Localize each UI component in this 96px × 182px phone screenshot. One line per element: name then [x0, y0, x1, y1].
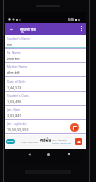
staticText: Jan. Nam — [7, 108, 21, 112]
button[interactable]: Home — [44, 150, 52, 158]
button[interactable]: Jan. Nam — [5, 107, 86, 121]
staticText: Jan - ugha dis — [7, 122, 27, 126]
staticText: Date of Birth — [7, 80, 26, 84]
staticText: 3,03,841 — [7, 113, 22, 118]
button[interactable]: More options — [78, 25, 85, 32]
button[interactable]: Jan - ugha dis — [5, 121, 86, 135]
staticText: 1,03,496 — [7, 99, 22, 104]
staticText: सीता देवी — [7, 70, 20, 75]
staticText: 15,50,55,555 — [7, 127, 29, 132]
staticText: Classes Google Play — [52, 142, 72, 145]
staticText: Top 1 Training — [52, 139, 67, 142]
staticText: Mother Name — [7, 65, 28, 69]
staticText: Student's Name — [7, 37, 31, 41]
staticText: राम — [7, 42, 12, 47]
staticText: श्याम राम — [7, 56, 20, 61]
staticText: Fa. Name — [7, 51, 21, 55]
button[interactable]: Student's Name — [5, 36, 86, 50]
staticText: सूचना पत्र — [20, 26, 36, 32]
button[interactable]: Back — [25, 150, 33, 158]
staticText: 1,44,513 — [7, 85, 22, 90]
staticText: Great Textbook — [21, 140, 39, 143]
button[interactable]: Recent apps — [65, 150, 73, 158]
staticText: 5:16 — [68, 18, 74, 22]
button[interactable]: Back — [8, 26, 15, 33]
button[interactable]: Open app — [75, 138, 82, 145]
button[interactable]: Install — [5, 135, 86, 149]
staticText: Install — [7, 140, 14, 143]
button[interactable]: Date of Birth — [5, 79, 86, 93]
button[interactable]: Fa. Name — [5, 50, 86, 64]
staticText: Student's Class — [7, 94, 29, 98]
button[interactable]: Mother Name — [5, 64, 86, 78]
staticText: सर्वश्रेष्ठ — [40, 138, 52, 143]
button[interactable]: Close ad — [70, 123, 79, 132]
button[interactable]: Student's Class — [5, 93, 86, 107]
button[interactable]: Install — [6, 139, 15, 144]
